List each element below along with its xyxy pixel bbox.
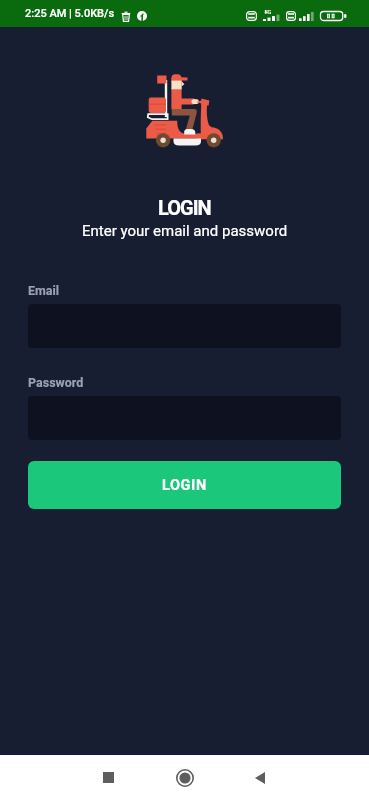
button[interactable]: LOGIN [28, 461, 341, 509]
staticText: Password [28, 375, 84, 390]
button[interactable]: Back [236, 755, 284, 800]
staticText: Email [28, 283, 60, 298]
staticText: LOGIN [162, 477, 207, 494]
staticText: Enter your email and password [82, 222, 288, 240]
button[interactable]: Recents [84, 755, 132, 800]
button[interactable]: Home [161, 755, 209, 800]
staticText: 2:25 AM | 5.0KB/s [25, 7, 115, 20]
staticText: LOGIN [158, 196, 211, 219]
